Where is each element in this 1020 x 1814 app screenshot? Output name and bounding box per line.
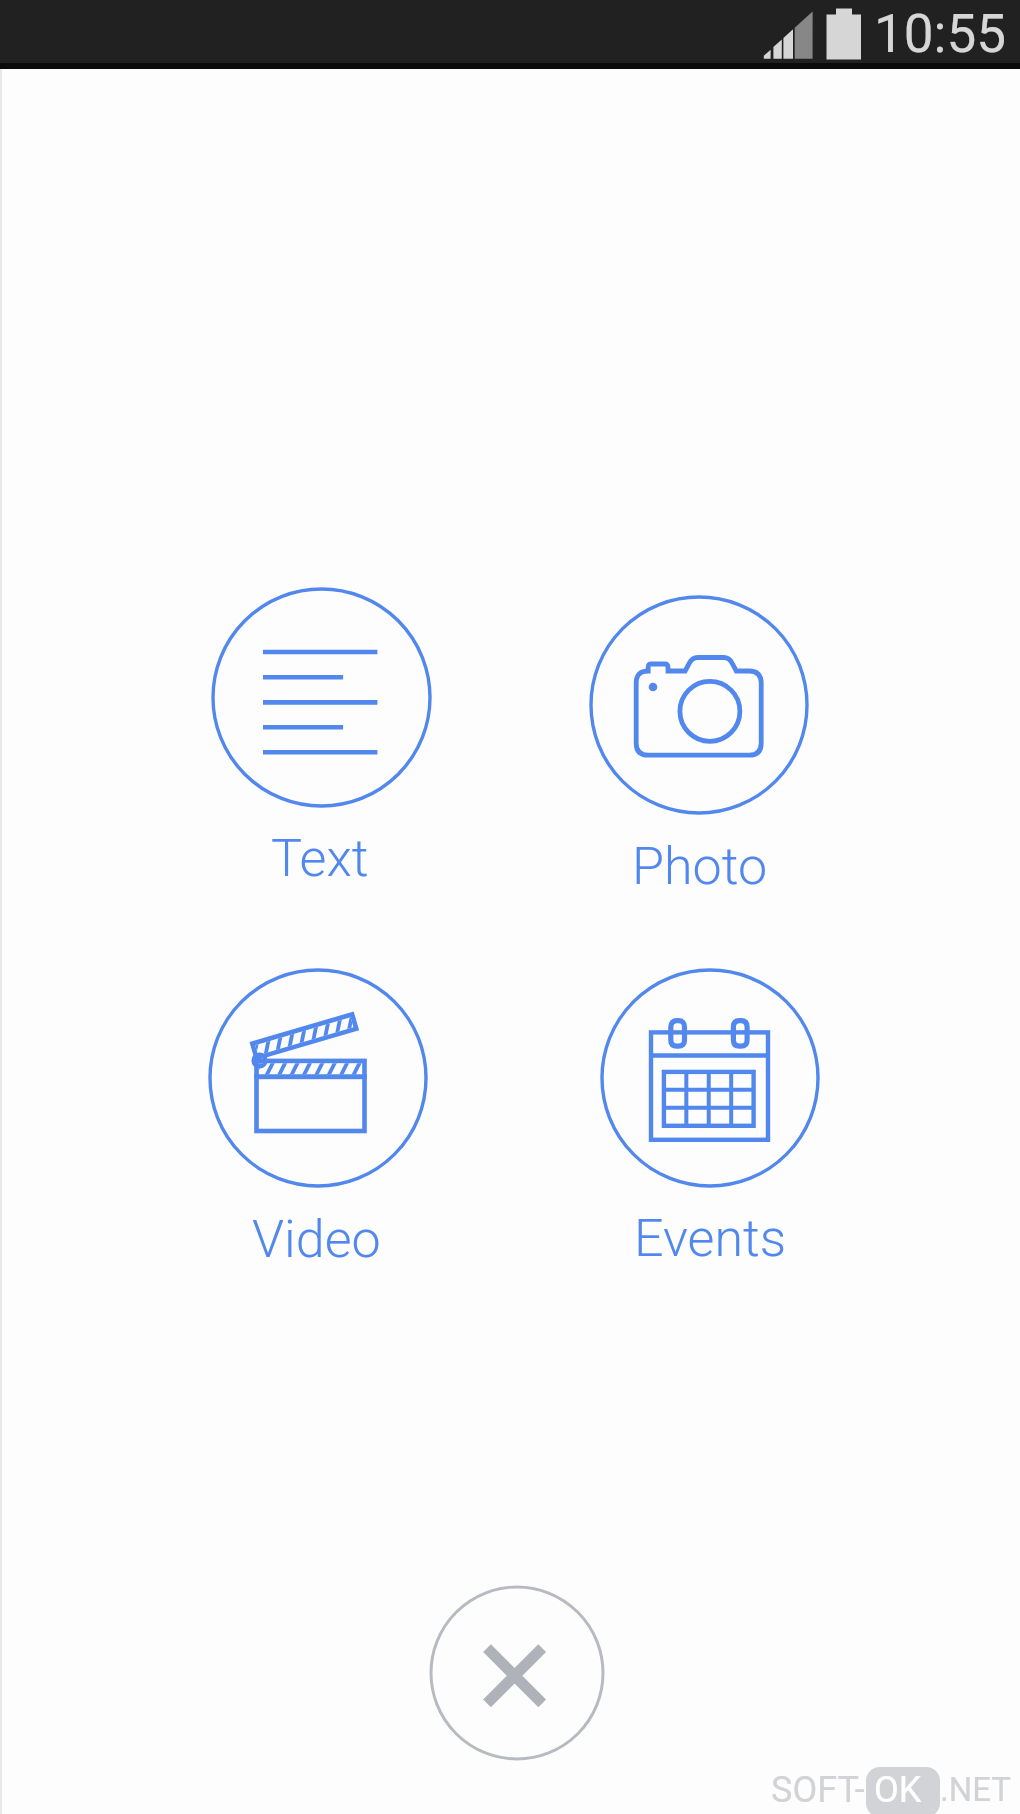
button[interactable]: Video [196,956,440,1200]
staticText: SOFT- [771,1769,865,1811]
button[interactable]: Text [271,828,369,889]
button[interactable]: Close [423,1579,611,1767]
staticText: OK [874,1769,922,1811]
button[interactable]: Photo [577,583,821,827]
staticText: .NET [940,1770,1012,1809]
button[interactable]: Photo [632,836,768,897]
staticText: 10:55 [874,3,1006,65]
button[interactable]: Events [634,1208,787,1269]
button[interactable]: Text [199,575,444,820]
button[interactable]: Events [588,956,832,1200]
button[interactable]: Video [252,1209,381,1270]
